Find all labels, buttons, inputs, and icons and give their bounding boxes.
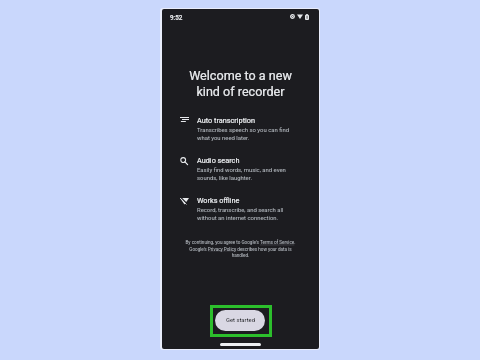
staticText: Audio search <box>197 156 240 165</box>
staticText: By continuing, you agree to Google's Ter… <box>170 240 311 258</box>
button[interactable]: Get started <box>215 310 265 331</box>
button[interactable]: Terms of Service <box>256 241 292 247</box>
staticText: Auto transcription <box>197 116 256 125</box>
staticText: 9:52 <box>170 14 183 21</box>
staticText: Easily find words, music, and even sound… <box>197 167 286 181</box>
button[interactable]: Privacy Policy <box>202 247 232 253</box>
staticText: Welcome to a new kind of recorder <box>172 68 309 99</box>
staticText: Works offline <box>197 196 240 205</box>
staticText: Transcribes speech so you can find what … <box>197 127 290 141</box>
staticText: Record, transcribe, and search all witho… <box>197 207 284 221</box>
staticText: Get started <box>226 317 255 324</box>
